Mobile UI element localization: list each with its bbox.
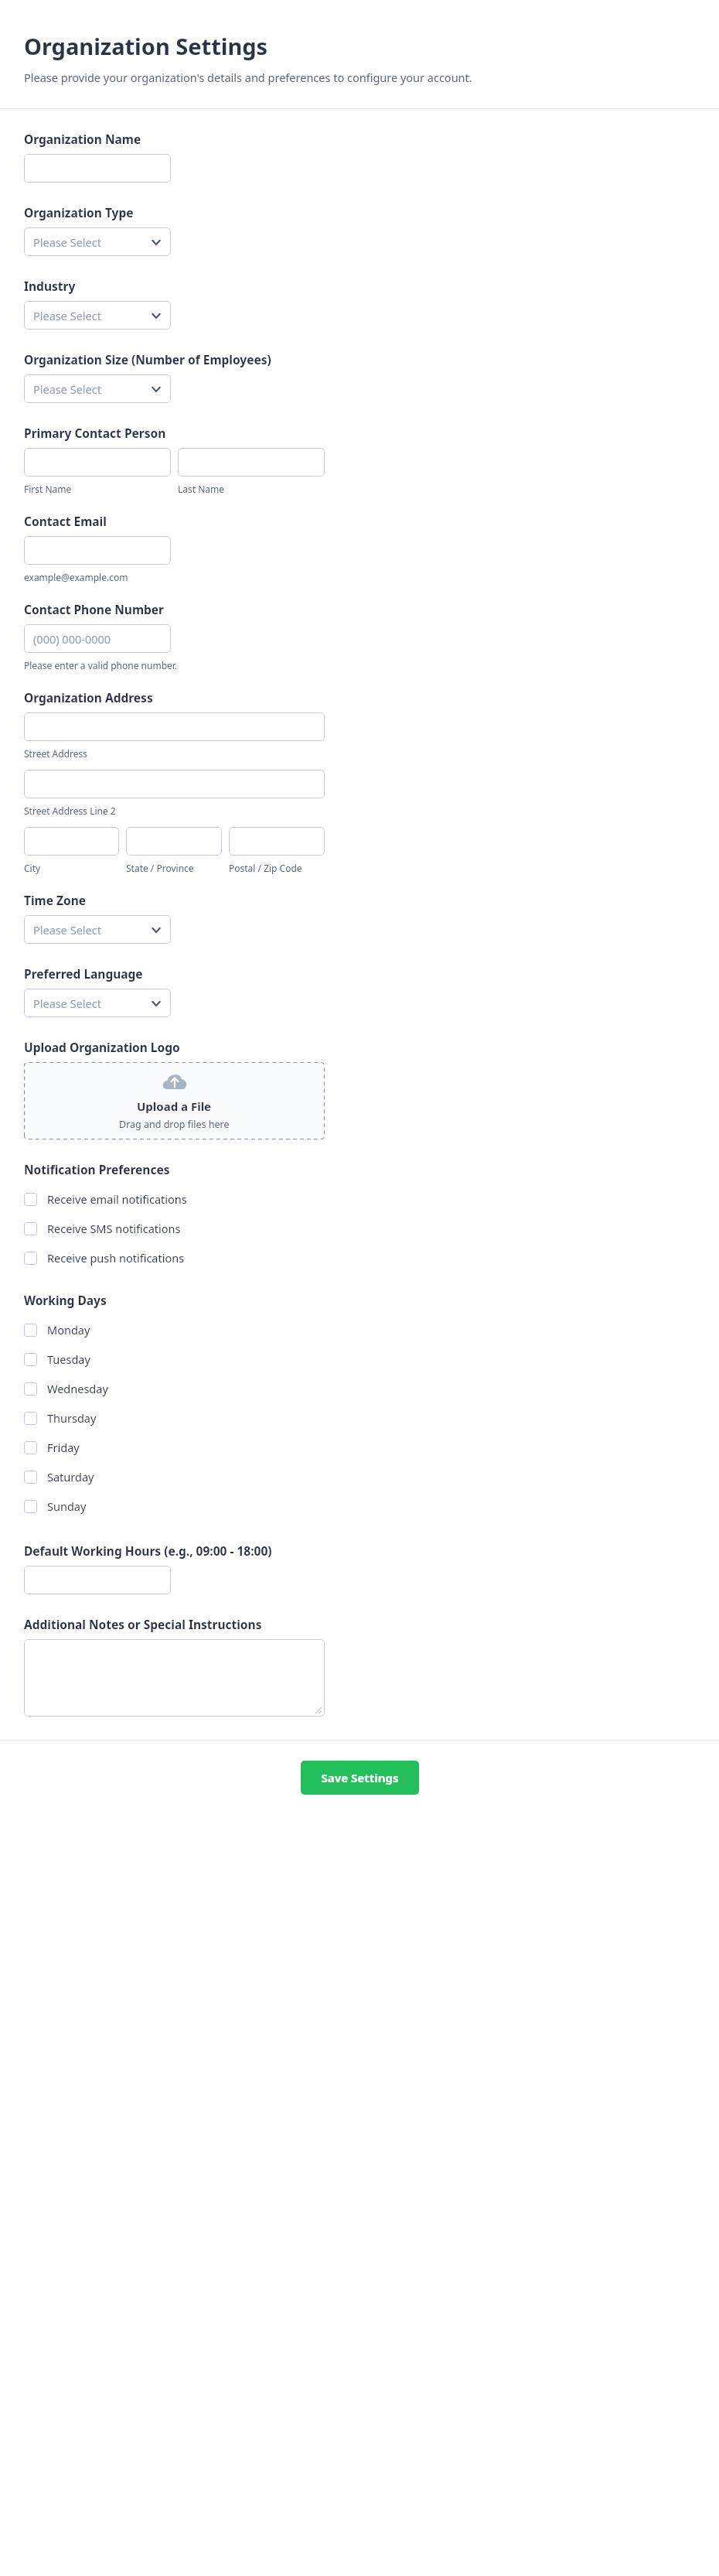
- staticText: Receive email notifications: [47, 1191, 187, 1207]
- button[interactable]: Tuesday: [24, 1344, 695, 1374]
- staticText: Thursday: [47, 1410, 97, 1426]
- staticText: First Name: [24, 483, 72, 495]
- other: Open dropdown: [151, 384, 162, 395]
- staticText: Saturday: [47, 1469, 94, 1484]
- button[interactable]: [229, 827, 325, 856]
- staticText: Contact Email: [24, 513, 107, 529]
- staticText: Time Zone: [24, 892, 86, 908]
- button[interactable]: [24, 770, 325, 798]
- button[interactable]: Saturday: [24, 1462, 695, 1491]
- other: Open dropdown: [151, 998, 162, 1009]
- staticText: Sunday: [47, 1498, 87, 1514]
- staticText: Default Working Hours (e.g., 09:00 - 18:…: [24, 1543, 272, 1559]
- button[interactable]: Save Settings: [301, 1761, 419, 1795]
- staticText: Drag and drop files here: [119, 1118, 230, 1131]
- staticText: Please Select: [33, 381, 101, 397]
- other: Open dropdown: [151, 924, 162, 935]
- other: Open dropdown: [151, 310, 162, 321]
- staticText: Receive SMS notifications: [47, 1221, 181, 1236]
- button[interactable]: [24, 448, 171, 477]
- staticText: (000) 000-0000: [33, 631, 111, 647]
- staticText: Last Name: [178, 483, 225, 495]
- button[interactable]: Please Select: [24, 374, 171, 403]
- button[interactable]: Please Select: [24, 989, 171, 1017]
- button[interactable]: Upload a File: [24, 1062, 325, 1139]
- staticText: Friday: [47, 1440, 80, 1455]
- staticText: Upload a File: [137, 1098, 212, 1114]
- staticText: Organization Name: [24, 131, 141, 147]
- staticText: Primary Contact Person: [24, 425, 166, 441]
- staticText: Please provide your organization's detai…: [24, 70, 565, 85]
- staticText: Contact Phone Number: [24, 601, 164, 617]
- button[interactable]: [24, 1639, 325, 1717]
- button[interactable]: [24, 154, 171, 183]
- button[interactable]: Wednesday: [24, 1374, 695, 1403]
- other: Open dropdown: [151, 237, 162, 248]
- staticText: Organization Type: [24, 204, 134, 220]
- button[interactable]: [24, 712, 325, 741]
- button[interactable]: Sunday: [24, 1491, 695, 1521]
- staticText: Street Address: [24, 747, 88, 760]
- staticText: Preferred Language: [24, 965, 143, 982]
- staticText: City: [24, 862, 41, 874]
- staticText: Additional Notes or Special Instructions: [24, 1616, 262, 1632]
- button[interactable]: Receive push notifications: [24, 1243, 695, 1273]
- staticText: Tuesday: [47, 1351, 90, 1367]
- staticText: Organization Settings: [24, 31, 268, 61]
- staticText: Save Settings: [321, 1770, 399, 1785]
- staticText: Industry: [24, 278, 76, 294]
- button[interactable]: Please Select: [24, 915, 171, 944]
- staticText: Street Address Line 2: [24, 805, 116, 817]
- staticText: Please Select: [33, 234, 101, 250]
- staticText: Upload Organization Logo: [24, 1039, 180, 1055]
- staticText: Monday: [47, 1322, 90, 1338]
- staticText: Notification Preferences: [24, 1161, 170, 1177]
- staticText: Wednesday: [47, 1381, 108, 1396]
- staticText: Organization Address: [24, 689, 153, 705]
- staticText: Please Select: [33, 922, 101, 938]
- staticText: Please Select: [33, 996, 101, 1011]
- button[interactable]: [24, 536, 171, 565]
- button[interactable]: Friday: [24, 1433, 695, 1462]
- button[interactable]: [24, 1566, 171, 1594]
- staticText: Please enter a valid phone number.: [24, 659, 178, 671]
- staticText: State / Province: [126, 862, 194, 874]
- button[interactable]: [24, 827, 119, 856]
- button[interactable]: Please Select: [24, 301, 171, 330]
- button[interactable]: (000) 000-0000: [24, 624, 171, 653]
- button[interactable]: Receive email notifications: [24, 1184, 695, 1214]
- staticText: Working Days: [24, 1292, 107, 1308]
- button[interactable]: Receive SMS notifications: [24, 1214, 695, 1243]
- staticText: Organization Size (Number of Employees): [24, 351, 271, 367]
- button[interactable]: Thursday: [24, 1403, 695, 1433]
- button[interactable]: Please Select: [24, 227, 171, 256]
- button[interactable]: [178, 448, 325, 477]
- staticText: Postal / Zip Code: [229, 862, 302, 874]
- staticText: Please Select: [33, 308, 101, 323]
- staticText: example@example.com: [24, 571, 128, 583]
- staticText: Receive push notifications: [47, 1250, 185, 1266]
- button[interactable]: Monday: [24, 1315, 695, 1344]
- button[interactable]: [126, 827, 222, 856]
